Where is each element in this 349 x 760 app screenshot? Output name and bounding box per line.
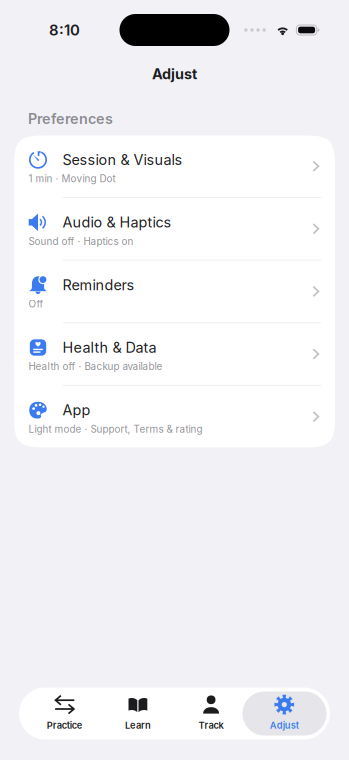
staticText: Preferences: [28, 110, 113, 127]
button[interactable]: App: [14, 386, 335, 447]
button[interactable]: Track: [174, 691, 248, 735]
staticText: Health & Data: [62, 339, 156, 356]
button[interactable]: Audio & Haptics: [14, 198, 335, 261]
staticText: 1 min · Moving Dot: [28, 173, 115, 185]
staticText: 8:10: [49, 21, 80, 39]
button[interactable]: Practice: [28, 691, 101, 735]
staticText: Sound off · Haptics on: [28, 235, 133, 247]
staticText: Off: [28, 298, 43, 310]
staticText: Audio & Haptics: [62, 214, 171, 231]
staticText: Practice: [47, 720, 83, 731]
staticText: Adjust: [152, 65, 197, 83]
button[interactable]: Reminders: [14, 261, 335, 323]
staticText: Health off · Backup available: [28, 361, 162, 372]
button[interactable]: Adjust: [248, 691, 321, 735]
button[interactable]: Session & Visuals: [14, 135, 335, 198]
staticText: Session & Visuals: [62, 151, 182, 168]
staticText: Learn: [125, 720, 151, 731]
staticText: App: [62, 401, 90, 419]
button[interactable]: Health & Data: [14, 323, 335, 386]
button[interactable]: Learn: [101, 691, 174, 735]
staticText: Reminders: [62, 276, 134, 294]
staticText: Track: [199, 720, 224, 731]
staticText: Light mode · Support, Terms & rating: [28, 423, 202, 435]
staticText: Adjust: [270, 720, 299, 731]
